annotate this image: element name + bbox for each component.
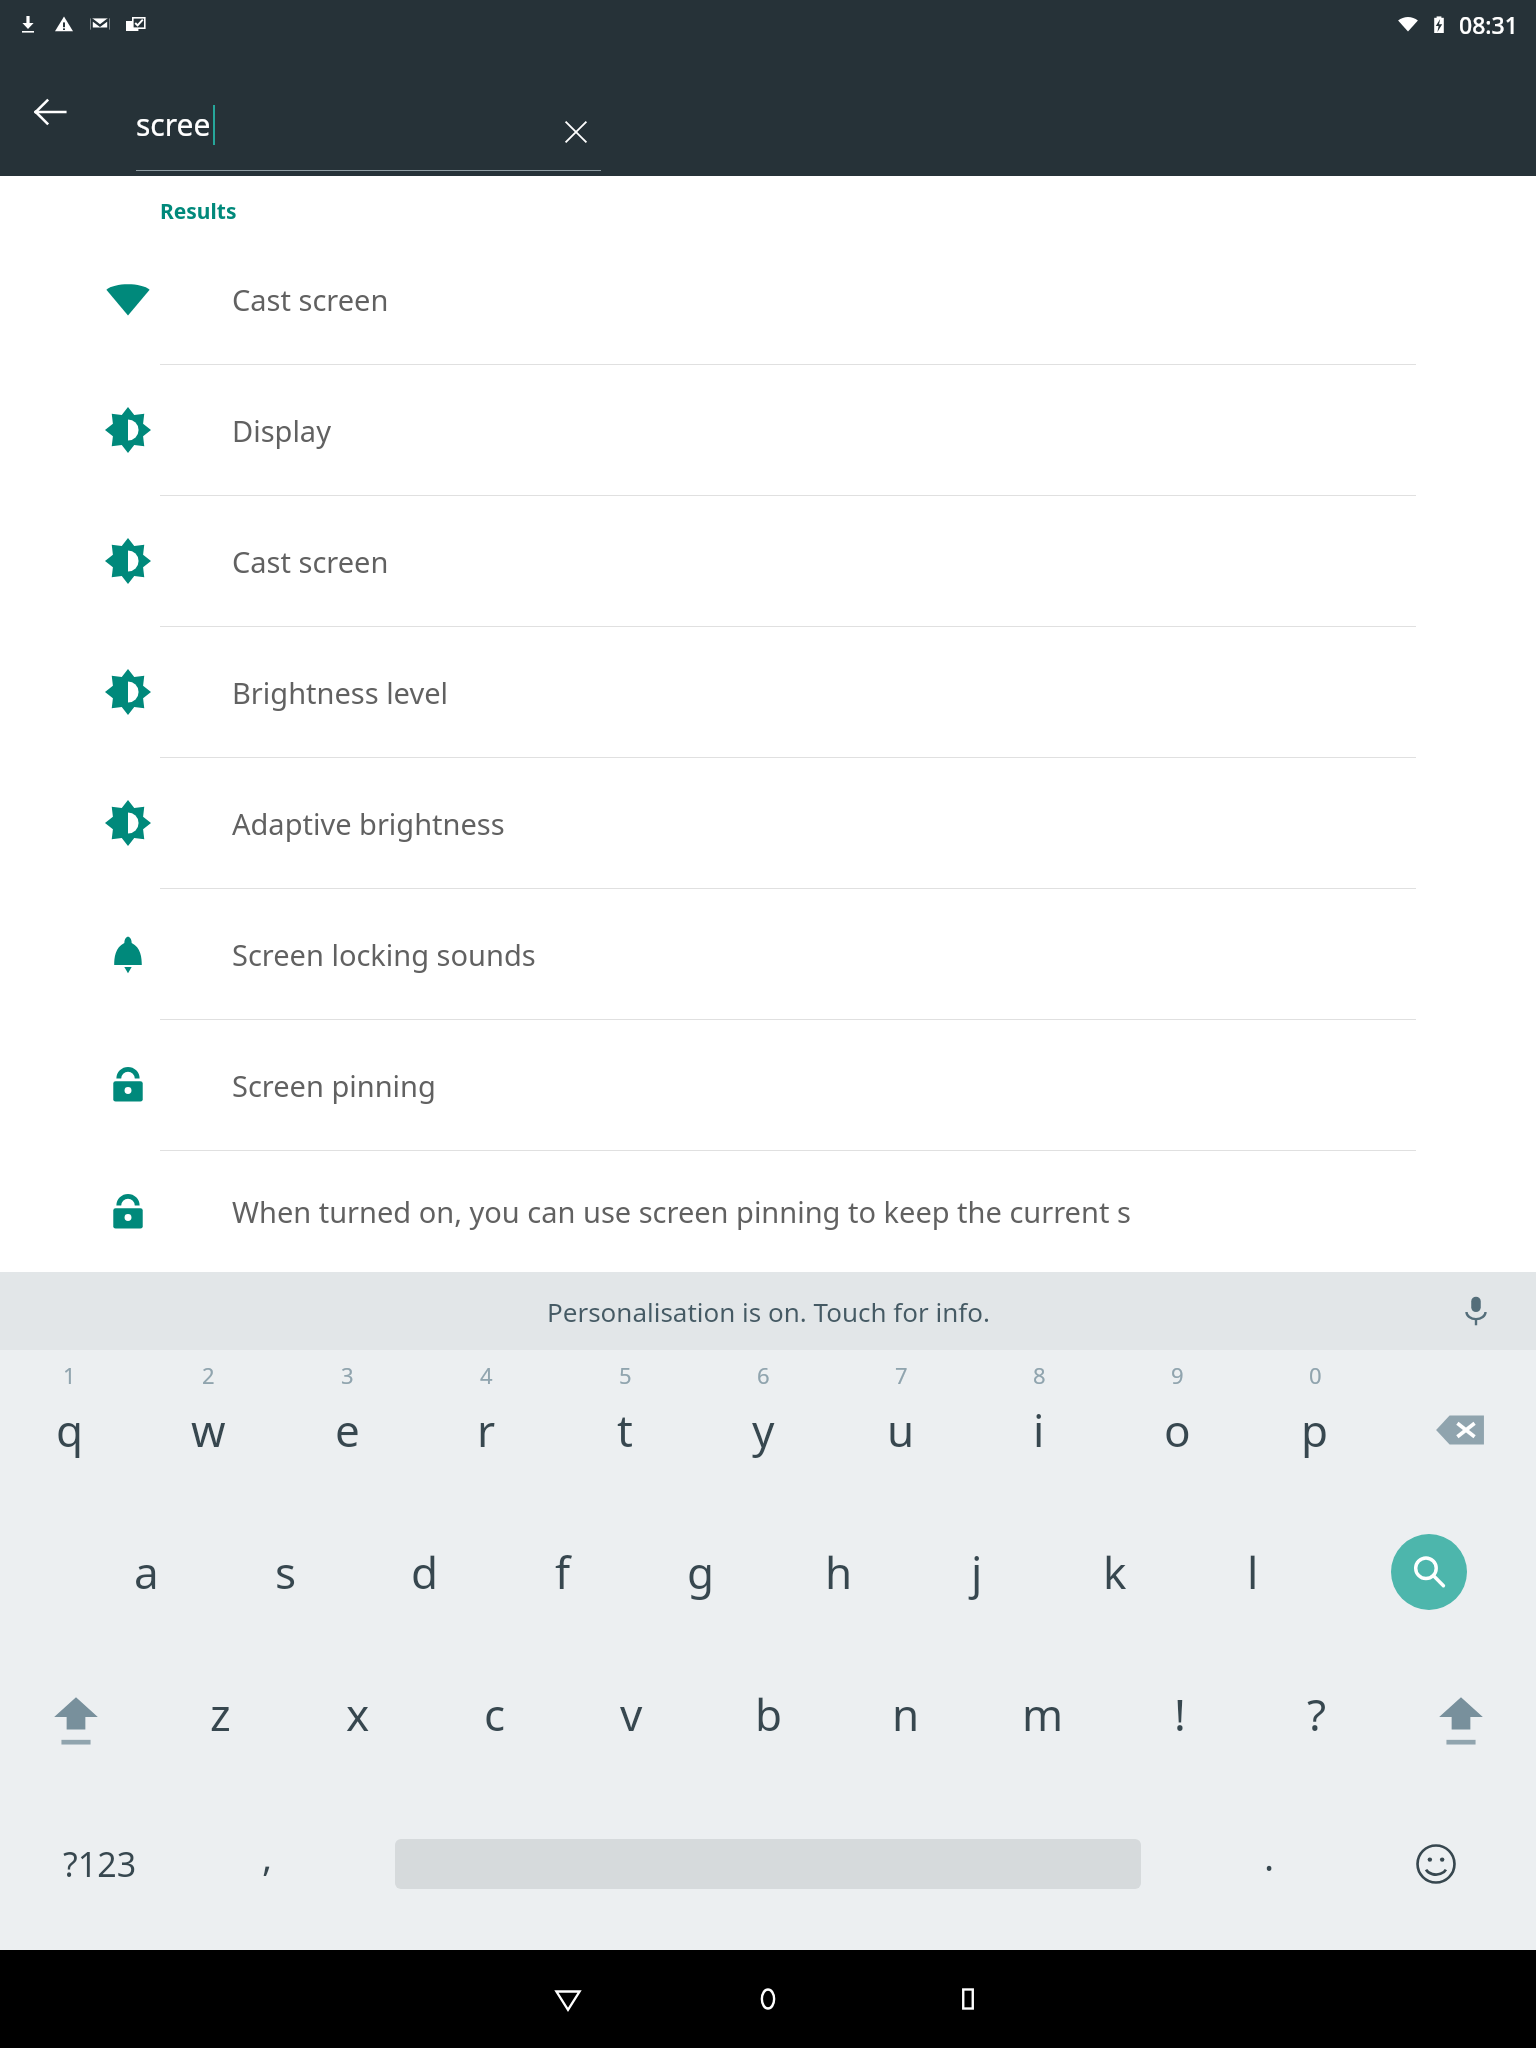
staticText: l [1247,1542,1259,1602]
button[interactable]: m [974,1646,1111,1794]
button[interactable]: Voice input [1448,1283,1504,1339]
staticText: h [825,1542,853,1602]
button[interactable]: Shift [1385,1646,1536,1794]
staticText: c [484,1684,506,1744]
button[interactable]: l [1184,1498,1322,1646]
button[interactable]: Back [14,76,86,148]
button[interactable]: 8 [970,1350,1108,1498]
button[interactable]: 4 [417,1350,556,1498]
staticText: Adaptive brightness [232,804,505,843]
button[interactable]: Space [334,1794,1202,1934]
staticText: 8 [1033,1360,1046,1390]
button[interactable]: 5 [556,1350,694,1498]
staticText: 1 [63,1360,76,1390]
staticText: v [620,1684,643,1744]
staticText: ? [1307,1684,1327,1744]
button[interactable]: x [289,1646,426,1794]
staticText: z [210,1684,231,1744]
staticText: e [335,1400,360,1460]
button[interactable]: Personalisation is on. Touch for info. [0,1272,1536,1350]
staticText: 2 [202,1360,215,1390]
button[interactable]: Adaptive brightness [0,758,1536,888]
staticText: o [1164,1400,1191,1460]
button[interactable]: Cast screen [0,496,1536,626]
button[interactable]: Back [508,1950,628,2048]
staticText: Cast screen [232,280,389,319]
staticText: Results [160,197,237,226]
button[interactable]: Display [0,365,1536,495]
button[interactable]: ?123 [0,1794,200,1934]
button[interactable]: c [426,1646,563,1794]
button[interactable]: Brightness level [0,627,1536,757]
button[interactable]: g [632,1498,770,1646]
button[interactable]: 9 [1108,1350,1246,1498]
staticText: 6 [757,1360,770,1390]
staticText: Display [232,411,331,450]
staticText: j [971,1542,983,1602]
button[interactable]: Home [708,1950,828,2048]
staticText: q [56,1400,84,1460]
button[interactable]: Screen pinning [0,1020,1536,1150]
button[interactable]: j [908,1498,1046,1646]
button[interactable]: f [494,1498,632,1646]
button[interactable]: 6 [694,1350,832,1498]
staticText: 5 [619,1360,632,1390]
staticText: 7 [895,1360,908,1390]
button[interactable]: h [770,1498,908,1646]
button[interactable]: Shift [0,1646,152,1794]
staticText: ! [1174,1684,1186,1744]
button[interactable]: Screen locking sounds [0,889,1536,1019]
staticText: m [1022,1684,1064,1744]
button[interactable]: ! [1111,1646,1248,1794]
button[interactable]: ? [1248,1646,1385,1794]
staticText: a [134,1542,159,1602]
staticText: f [555,1542,571,1602]
staticText: r [477,1400,496,1460]
button[interactable]: b [700,1646,837,1794]
staticText: . [1264,1830,1275,1882]
button[interactable]: Recents [908,1950,1028,2048]
button[interactable]: Clear [540,96,612,168]
button[interactable]: When turned on, you can use screen pinni… [0,1151,1536,1272]
button[interactable]: 7 [832,1350,970,1498]
staticText: When turned on, you can use screen pinni… [232,1192,1131,1231]
staticText: , [262,1830,273,1882]
button[interactable]: n [837,1646,974,1794]
staticText: w [191,1400,226,1460]
button[interactable]: Backspace [1384,1350,1536,1498]
button[interactable]: Emoji [1336,1794,1536,1934]
button[interactable]: a [77,1498,216,1646]
button[interactable]: 3 [278,1350,417,1498]
button[interactable]: 0 [1246,1350,1384,1498]
button[interactable]: Search [1322,1498,1536,1646]
staticText: u [887,1400,915,1460]
staticText: Personalisation is on. Touch for info. [547,1294,990,1329]
staticText: k [1103,1542,1127,1602]
staticText: b [755,1684,783,1744]
button[interactable]: 2 [139,1350,278,1498]
staticText: 3 [341,1360,354,1390]
button[interactable]: Cast screen [0,234,1536,364]
button[interactable]: d [355,1498,494,1646]
staticText: 0 [1309,1360,1322,1390]
button[interactable]: z [152,1646,289,1794]
staticText: 08:31 [1459,9,1518,40]
staticText: 9 [1171,1360,1184,1390]
staticText: Screen locking sounds [232,935,536,974]
button[interactable]: 1 [0,1350,139,1498]
staticText: g [687,1542,715,1602]
button[interactable]: v [563,1646,700,1794]
button[interactable]: k [1046,1498,1184,1646]
staticText: y [752,1400,775,1460]
button[interactable]: , [200,1794,334,1934]
staticText: Screen pinning [232,1066,436,1105]
button[interactable]: . [1202,1794,1336,1934]
staticText: p [1301,1400,1329,1460]
button[interactable]: s [216,1498,355,1646]
staticText: ?123 [63,1841,137,1887]
staticText: s [275,1542,297,1602]
staticText: t [617,1400,633,1460]
staticText: Cast screen [232,542,389,581]
staticText: x [346,1684,370,1744]
staticText: d [411,1542,439,1602]
